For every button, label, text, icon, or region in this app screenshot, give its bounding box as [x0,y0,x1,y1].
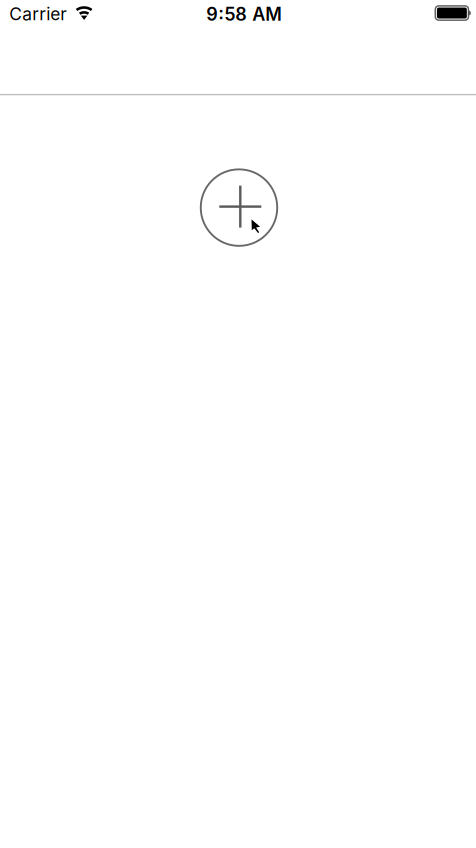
staticText: Carrier [9,3,67,24]
button[interactable]: Add [195,164,283,252]
staticText: 9:58 AM [206,3,282,25]
